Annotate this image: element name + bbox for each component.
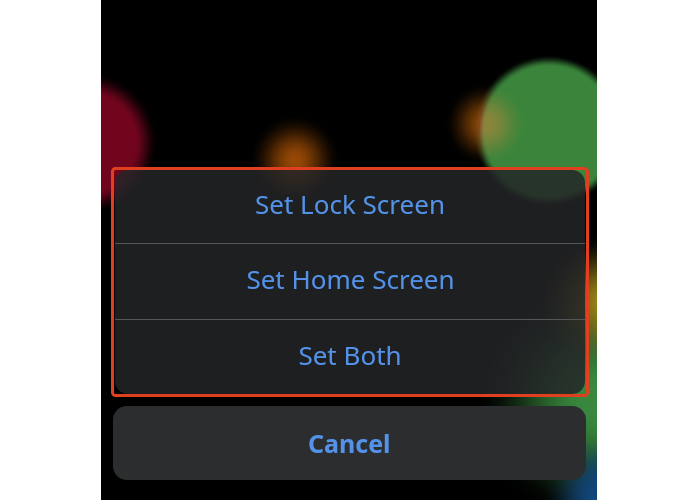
staticText: Set Lock Screen <box>255 186 445 221</box>
button[interactable]: Set Home Screen <box>115 244 585 319</box>
button[interactable]: Set Lock Screen <box>115 170 585 243</box>
button[interactable]: Set Both <box>115 320 585 394</box>
staticText: Set Both <box>298 337 402 372</box>
staticText: Cancel <box>308 426 391 460</box>
button[interactable]: Cancel <box>113 406 586 480</box>
staticText: Set Home Screen <box>246 261 455 296</box>
